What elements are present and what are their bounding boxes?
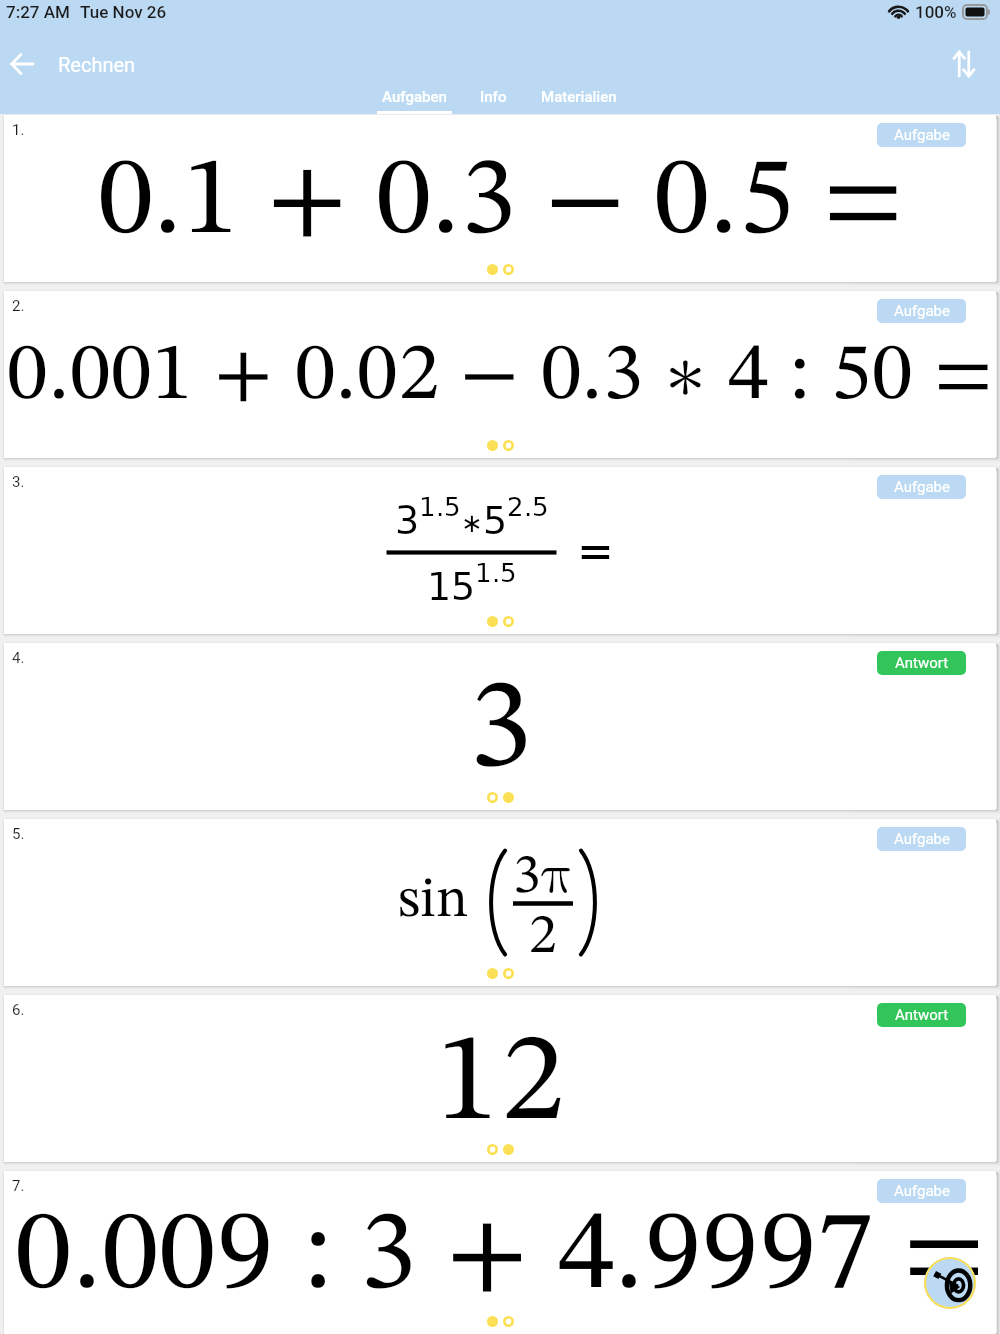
staticText: Aufgabe <box>894 302 950 320</box>
staticText: 5. <box>12 825 25 843</box>
button[interactable]: Antwort <box>877 651 966 675</box>
staticText: Aufgabe <box>894 478 950 496</box>
button[interactable]: 2. <box>4 291 996 458</box>
staticText: 4. <box>12 649 25 667</box>
staticText: Aufgabe <box>894 1182 950 1200</box>
button[interactable]: Antwort <box>877 1003 966 1027</box>
staticText: 3. <box>12 473 25 491</box>
button[interactable]: 7. <box>4 1171 996 1334</box>
button[interactable]: 1. <box>4 115 996 282</box>
button[interactable]: 3. <box>4 467 996 634</box>
staticText: Rechnen <box>58 53 136 76</box>
staticText: 1. <box>12 121 25 139</box>
button[interactable]: Aufgaben <box>377 88 452 114</box>
button[interactable]: Target practice <box>924 1257 976 1309</box>
button[interactable]: Aufgabe <box>877 299 966 323</box>
button[interactable]: Materialien <box>534 88 624 114</box>
button[interactable]: Aufgabe <box>877 123 966 147</box>
staticText: Antwort <box>895 1006 949 1024</box>
staticText: 7:27 AM <box>6 2 70 22</box>
button[interactable]: Info <box>466 88 520 114</box>
staticText: Materialien <box>541 88 617 106</box>
staticText: 2. <box>12 297 25 315</box>
button[interactable]: Back <box>10 40 58 88</box>
staticText: Aufgaben <box>382 88 447 106</box>
button[interactable]: 5. <box>4 819 996 986</box>
staticText: Aufgabe <box>894 126 950 144</box>
button[interactable]: Sort <box>942 42 986 86</box>
button[interactable]: Aufgabe <box>877 475 966 499</box>
button[interactable]: Aufgabe <box>877 1179 966 1203</box>
staticText: Aufgabe <box>894 830 950 848</box>
button[interactable]: 4. <box>4 643 996 810</box>
staticText: Antwort <box>895 654 949 672</box>
staticText: 100% <box>915 2 957 22</box>
staticText: 6. <box>12 1001 25 1019</box>
staticText: Info <box>480 88 507 106</box>
button[interactable]: 6. <box>4 995 996 1162</box>
staticText: 7. <box>12 1177 25 1195</box>
staticText: Tue Nov 26 <box>80 2 167 22</box>
button[interactable]: Aufgabe <box>877 827 966 851</box>
